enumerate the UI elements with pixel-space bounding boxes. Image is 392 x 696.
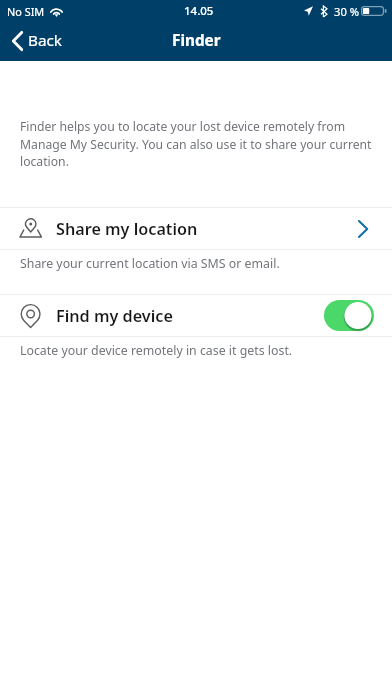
- staticText: Share my location: [56, 218, 198, 240]
- button[interactable]: Share my location: [0, 208, 392, 249]
- staticText: No SIM: [7, 4, 45, 19]
- staticText: Find my device: [56, 305, 173, 327]
- staticText: Back: [28, 30, 63, 51]
- staticText: Finder: [172, 30, 221, 51]
- staticText: Finder helps you to locate your lost dev…: [20, 118, 375, 169]
- staticText: Locate your device remotely in case it g…: [20, 342, 293, 359]
- button[interactable]: Find my device: [0, 295, 392, 336]
- staticText: Share your current location via SMS or e…: [20, 255, 280, 272]
- staticText: 14.05: [184, 3, 214, 19]
- button[interactable]: Find my device toggle: [324, 300, 374, 331]
- staticText: 30 %: [334, 4, 360, 19]
- button[interactable]: Back: [0, 22, 73, 61]
